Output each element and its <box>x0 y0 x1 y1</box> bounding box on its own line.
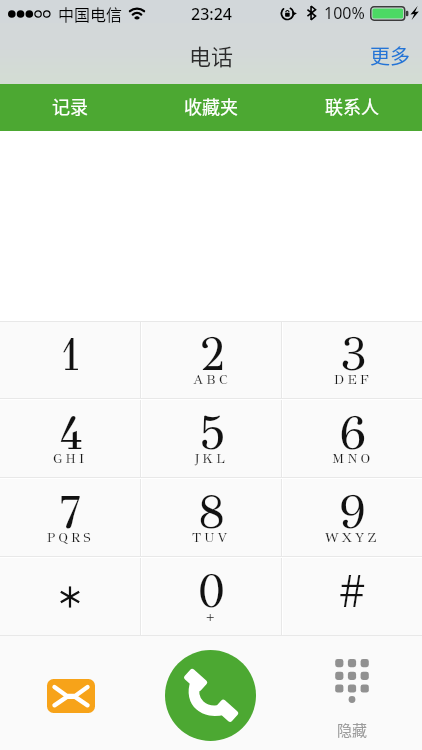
button[interactable]: 联系人 <box>281 84 422 131</box>
staticText: ABC <box>193 371 231 388</box>
button[interactable]: Call <box>165 650 256 741</box>
staticText: 100% <box>324 2 365 24</box>
staticText: 收藏夹 <box>184 93 238 119</box>
button[interactable]: 7 <box>0 479 140 556</box>
button[interactable]: # <box>283 558 422 635</box>
button[interactable]: 收藏夹 <box>140 84 281 131</box>
staticText: 0 <box>198 562 225 620</box>
staticText: 8 <box>198 483 225 541</box>
staticText: 3 <box>340 325 367 383</box>
staticText: 6 <box>339 404 367 462</box>
staticText: JKL <box>195 450 229 467</box>
button[interactable]: Messages <box>47 679 95 713</box>
button[interactable]: 5 <box>142 400 281 477</box>
staticText: 4 <box>58 404 84 462</box>
button[interactable]: Hide keypad <box>328 659 376 741</box>
staticText: 5 <box>199 404 226 462</box>
staticText: TUV <box>192 529 231 546</box>
button[interactable]: 4 <box>0 400 140 477</box>
button[interactable]: 8 <box>142 479 281 556</box>
button[interactable]: 0 <box>142 558 281 635</box>
staticText: GHI <box>53 450 88 467</box>
staticText: 联系人 <box>325 93 379 119</box>
staticText: + <box>206 608 218 625</box>
button[interactable]: 1 <box>0 322 140 398</box>
staticText: PQRS <box>47 529 94 546</box>
staticText: 7 <box>59 483 82 541</box>
staticText: 9 <box>339 483 366 541</box>
staticText: WXYZ <box>325 529 380 546</box>
button[interactable]: 6 <box>283 400 422 477</box>
button[interactable]: 9 <box>283 479 422 556</box>
button[interactable] <box>0 558 140 635</box>
staticText: 1 <box>59 325 82 383</box>
staticText: 隐藏 <box>337 719 368 741</box>
staticText: 记录 <box>52 93 88 119</box>
staticText: 中国电信 <box>58 2 123 25</box>
staticText: 23:24 <box>191 3 232 25</box>
staticText: 2 <box>199 325 226 383</box>
button[interactable]: 更多 <box>358 33 422 78</box>
button[interactable]: 3 <box>283 322 422 398</box>
staticText: 更多 <box>370 41 410 70</box>
staticText: # <box>340 562 365 620</box>
staticText: MNO <box>332 450 374 467</box>
staticText: 电话 <box>189 39 234 71</box>
staticText: DEF <box>334 371 372 388</box>
button[interactable]: 2 <box>142 322 281 398</box>
button[interactable]: 记录 <box>0 84 140 131</box>
